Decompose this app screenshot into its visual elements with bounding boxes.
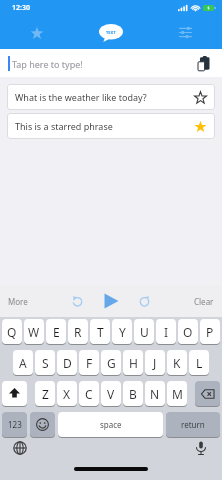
button[interactable]: K xyxy=(167,350,187,375)
button[interactable]: return xyxy=(166,412,220,437)
staticText: P xyxy=(206,324,214,340)
button[interactable]: This is a starred phrase xyxy=(7,113,215,139)
button[interactable] xyxy=(30,412,55,437)
button[interactable]: W xyxy=(24,319,44,344)
button[interactable] xyxy=(102,292,120,310)
staticText: Z xyxy=(42,386,49,402)
button[interactable]: B xyxy=(123,381,143,406)
staticText: N xyxy=(150,386,160,402)
button[interactable] xyxy=(72,296,83,307)
button[interactable]: S xyxy=(35,350,55,375)
button[interactable]: I xyxy=(156,319,176,344)
staticText: O xyxy=(183,324,193,340)
button[interactable]: V xyxy=(101,381,121,406)
staticText: Tap here to type! xyxy=(12,58,83,70)
staticText: L xyxy=(196,355,203,371)
staticText: B xyxy=(129,386,137,402)
button[interactable]: O xyxy=(178,319,198,344)
staticText: A xyxy=(19,355,27,371)
button[interactable]: Z xyxy=(35,381,55,406)
staticText: return xyxy=(181,419,205,430)
button[interactable] xyxy=(0,16,74,49)
button[interactable]: M xyxy=(167,381,187,406)
staticText: W xyxy=(28,324,40,340)
button[interactable]: F xyxy=(79,350,99,375)
staticText: K xyxy=(173,355,181,371)
staticText: M xyxy=(172,386,183,402)
button[interactable]: TEXT xyxy=(74,16,148,49)
staticText: More xyxy=(8,296,28,307)
button[interactable]: H xyxy=(123,350,143,375)
button[interactable]: L xyxy=(189,350,209,375)
staticText: TEXT xyxy=(106,30,116,35)
button[interactable]: space xyxy=(58,412,163,437)
button[interactable]: What is the weather like today? xyxy=(7,84,215,110)
staticText: J xyxy=(153,355,157,371)
staticText: G xyxy=(107,355,116,371)
button[interactable]: 123 xyxy=(2,412,27,437)
button[interactable]: Q xyxy=(2,319,22,344)
staticText: D xyxy=(63,355,72,371)
button[interactable]: A xyxy=(13,350,33,375)
staticText: U xyxy=(140,324,149,340)
staticText: Y xyxy=(119,324,126,340)
staticText: S xyxy=(42,355,49,371)
button[interactable]: N xyxy=(145,381,165,406)
button[interactable]: X xyxy=(57,381,77,406)
staticText: I xyxy=(164,324,169,340)
staticText: E xyxy=(53,324,60,340)
staticText: What is the weather like today? xyxy=(15,91,147,103)
button[interactable]: T xyxy=(90,319,110,344)
button[interactable]: C xyxy=(79,381,99,406)
staticText: 12:30 xyxy=(12,3,30,13)
staticText: Clear xyxy=(194,296,214,307)
button[interactable]: J xyxy=(145,350,165,375)
button[interactable]: P xyxy=(200,319,220,344)
button[interactable]: R xyxy=(68,319,88,344)
button[interactable]: G xyxy=(101,350,121,375)
staticText: V xyxy=(107,386,115,402)
button[interactable]: Tap here to type! xyxy=(0,49,222,77)
staticText: H xyxy=(129,355,138,371)
button[interactable] xyxy=(13,441,27,455)
button[interactable] xyxy=(195,441,207,455)
button[interactable]: E xyxy=(46,319,66,344)
staticText: T xyxy=(97,324,104,340)
staticText: C xyxy=(85,386,93,402)
staticText: Q xyxy=(7,324,17,340)
staticText: X xyxy=(63,386,71,402)
staticText: space xyxy=(100,419,122,430)
staticText: R xyxy=(74,324,82,340)
button[interactable] xyxy=(2,381,27,406)
staticText: F xyxy=(86,355,93,371)
button[interactable] xyxy=(139,296,150,307)
button[interactable] xyxy=(148,16,222,49)
button[interactable]: D xyxy=(57,350,77,375)
button[interactable]: Y xyxy=(112,319,132,344)
button[interactable] xyxy=(195,381,220,406)
button[interactable]: U xyxy=(134,319,154,344)
staticText: This is a starred phrase xyxy=(15,120,113,132)
staticText: 123 xyxy=(8,419,22,430)
